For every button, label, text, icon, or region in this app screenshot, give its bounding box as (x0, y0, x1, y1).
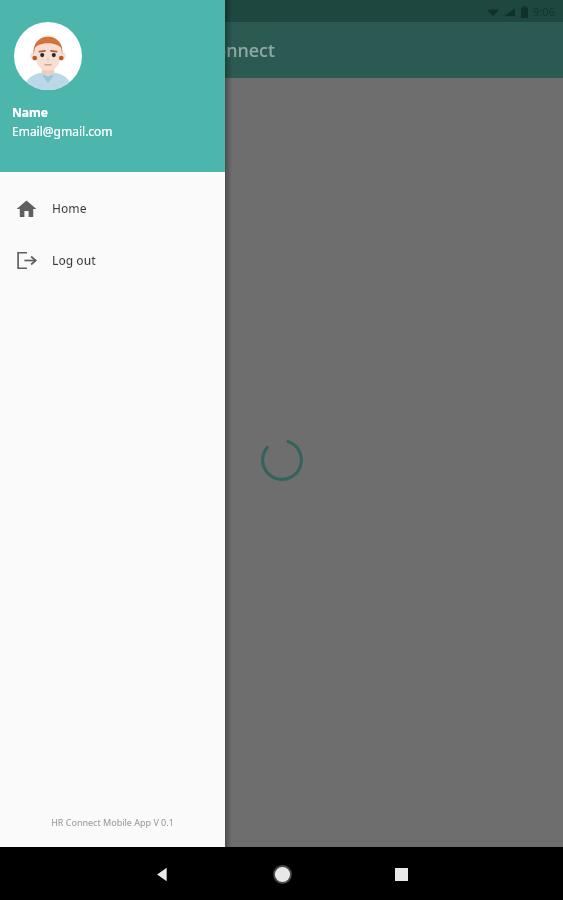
staticText: Home (52, 200, 87, 216)
staticText: Log out (52, 252, 96, 268)
button[interactable]: Home (267, 859, 297, 889)
staticText: Name (12, 104, 48, 120)
other: Home (16, 198, 37, 219)
button[interactable]: Home (0, 195, 225, 221)
button[interactable]: Back (148, 860, 176, 888)
staticText: Welcome to HR Connect (68, 38, 275, 63)
other: Log out (16, 250, 37, 271)
staticText: HR Connect Mobile App V 0.1 (0, 816, 225, 828)
button[interactable]: Log out (0, 247, 225, 273)
staticText: Email@gmail.com (12, 123, 113, 139)
staticText: 9:06 (533, 4, 555, 19)
button[interactable]: Recent apps (387, 860, 415, 888)
